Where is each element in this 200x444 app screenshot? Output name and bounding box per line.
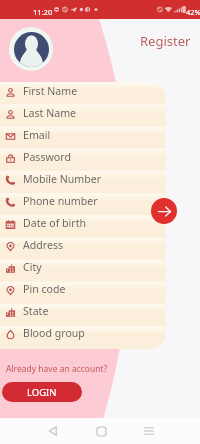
staticText: LOGIN	[27, 386, 57, 399]
staticText: Date of birth	[23, 216, 87, 230]
button[interactable]: Pin code	[0, 280, 166, 302]
button[interactable]: Email	[0, 126, 166, 148]
button[interactable]: Home	[92, 422, 110, 440]
button[interactable]: Profile photo	[9, 27, 53, 71]
staticText: Phone number	[23, 194, 98, 208]
button[interactable]: City	[0, 258, 166, 280]
staticText: State	[23, 304, 49, 318]
staticText: 11:20	[33, 7, 53, 17]
staticText: Mobile Number	[23, 172, 102, 186]
button[interactable]: Password	[0, 148, 166, 170]
button[interactable]: Mobile Number	[0, 170, 166, 192]
staticText: Email	[23, 128, 51, 142]
button[interactable]: Recent apps	[140, 422, 158, 440]
staticText: City	[23, 260, 42, 274]
button[interactable]: Blood group	[0, 324, 166, 346]
button[interactable]: LOGIN	[2, 382, 82, 402]
button[interactable]: Next	[151, 198, 177, 224]
button[interactable]: Back	[44, 422, 62, 440]
staticText: First Name	[23, 84, 78, 98]
button[interactable]: State	[0, 302, 166, 324]
button[interactable]: Date of birth	[0, 214, 166, 236]
button[interactable]: Phone number	[0, 192, 166, 214]
staticText: Address	[23, 238, 64, 252]
staticText: Pin code	[23, 282, 66, 296]
button[interactable]: First Name	[0, 82, 166, 104]
staticText: Blood group	[23, 326, 85, 340]
button[interactable]: Last Name	[0, 104, 166, 126]
staticText: Password	[23, 150, 71, 164]
staticText: Register	[140, 32, 191, 50]
button[interactable]: Already have an account?	[6, 363, 108, 375]
button[interactable]: Address	[0, 236, 166, 258]
staticText: 42%	[186, 7, 200, 17]
staticText: Last Name	[23, 106, 77, 120]
